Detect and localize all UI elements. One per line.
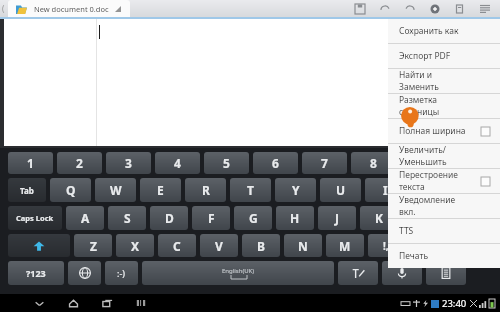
button[interactable]: 2 (57, 152, 102, 174)
button[interactable]: Menu (472, 0, 497, 17)
button[interactable]: Tab (8, 178, 46, 202)
button[interactable]: X (116, 234, 154, 257)
button[interactable]: 5 (204, 152, 249, 174)
staticText: ?. (422, 239, 430, 253)
button[interactable]: Z (74, 234, 112, 257)
staticText: 7 (321, 155, 328, 171)
button[interactable]: Экспорт PDF (388, 44, 500, 68)
button[interactable]: 0 (449, 152, 492, 174)
staticText: Найти и Заменить (399, 69, 472, 93)
button[interactable]: R (185, 178, 226, 202)
button[interactable]: Language (68, 261, 101, 285)
button[interactable]: K (360, 206, 398, 230)
button[interactable]: P (455, 178, 492, 202)
button[interactable]: Q (50, 178, 91, 202)
button[interactable]: H (276, 206, 314, 230)
button[interactable]: J (318, 206, 356, 230)
staticText: C (173, 238, 181, 254)
button[interactable]: 4 (155, 152, 200, 174)
button[interactable]: 8 (351, 152, 396, 174)
button[interactable]: E (140, 178, 181, 202)
staticText: Tab (20, 185, 34, 196)
button[interactable]: Найти и Заменить (388, 69, 500, 93)
button[interactable]: S (108, 206, 146, 230)
button[interactable]: Save (347, 0, 372, 17)
staticText: G (249, 210, 258, 226)
button[interactable]: New document 0.doc (8, 0, 130, 17)
button[interactable]: 3 (106, 152, 151, 174)
button[interactable]: TTS (388, 219, 500, 243)
button[interactable]: N (284, 234, 322, 257)
button[interactable]: I (365, 178, 406, 202)
button[interactable]: ?123 (8, 261, 64, 285)
button[interactable]: Undo (372, 0, 397, 17)
button[interactable]: Handwriting (338, 261, 378, 285)
button[interactable]: A (66, 206, 104, 230)
button[interactable]: !, (368, 234, 404, 257)
staticText: X (131, 238, 140, 254)
button[interactable]: V (200, 234, 238, 257)
button[interactable]: Увеличить/Уменьшить (388, 144, 500, 168)
staticText: P (470, 182, 478, 198)
button[interactable]: D (150, 206, 188, 230)
staticText: 4 (174, 155, 181, 171)
button[interactable]: :-) (105, 261, 138, 285)
staticText: K (375, 210, 383, 226)
button[interactable]: L (402, 206, 440, 230)
button[interactable]: C (158, 234, 196, 257)
button[interactable]: O (410, 178, 451, 202)
button[interactable]: 9 (400, 152, 445, 174)
staticText: 23:40 (442, 297, 467, 310)
button[interactable]: Home (56, 294, 90, 312)
button[interactable]: Enter (444, 206, 490, 230)
button[interactable]: ?. (408, 234, 444, 257)
staticText: 9 (419, 155, 426, 171)
button[interactable]: B (242, 234, 280, 257)
button[interactable]: Y (275, 178, 316, 202)
staticText: English(UK) (222, 267, 255, 275)
button[interactable]: 6 (253, 152, 298, 174)
button[interactable]: Space (142, 261, 334, 285)
button[interactable]: M (326, 234, 364, 257)
button[interactable]: Полная ширина (388, 119, 500, 143)
button[interactable]: Screenshot (124, 294, 158, 312)
staticText: H (290, 210, 300, 226)
button[interactable]: Уведомление вкл. (388, 194, 500, 218)
staticText: I (383, 182, 388, 198)
staticText: ?123 (26, 267, 46, 279)
staticText: F (208, 210, 215, 226)
staticText: 3 (125, 155, 132, 171)
button[interactable]: Перестроение текста (388, 169, 500, 193)
staticText: Разметка страницы (399, 94, 472, 118)
staticText: E (157, 182, 164, 198)
button[interactable]: 7 (302, 152, 347, 174)
staticText: TTS (399, 225, 414, 237)
button[interactable]: W (95, 178, 136, 202)
button[interactable]: T (230, 178, 271, 202)
staticText: 8 (370, 155, 377, 171)
button[interactable]: Shift (448, 234, 492, 257)
staticText: Caps Lock (16, 213, 54, 223)
button[interactable]: Redo (397, 0, 422, 17)
button[interactable]: F (192, 206, 230, 230)
button[interactable]: Page view (447, 0, 472, 17)
staticText: :-) (117, 267, 126, 279)
staticText: Экспорт PDF (399, 50, 451, 62)
button[interactable]: Сохранить как (388, 19, 500, 43)
button[interactable]: Разметка страницы (388, 94, 500, 118)
button[interactable]: U (320, 178, 361, 202)
button[interactable]: 1 (8, 152, 53, 174)
staticText: J (335, 210, 339, 226)
button[interactable]: Add (422, 0, 447, 17)
button[interactable]: Voice input (382, 261, 422, 285)
button[interactable]: Recents (90, 294, 124, 312)
button[interactable]: Caps Lock (8, 206, 62, 230)
staticText: Полная ширина (399, 125, 466, 137)
button[interactable]: Shift (8, 234, 70, 257)
button[interactable]: Hide keyboard (22, 294, 56, 312)
staticText: B (257, 238, 265, 254)
button[interactable]: Clipboard (426, 261, 466, 285)
button[interactable]: Печать (388, 244, 500, 268)
button[interactable]: G (234, 206, 272, 230)
staticText: W (110, 182, 122, 198)
